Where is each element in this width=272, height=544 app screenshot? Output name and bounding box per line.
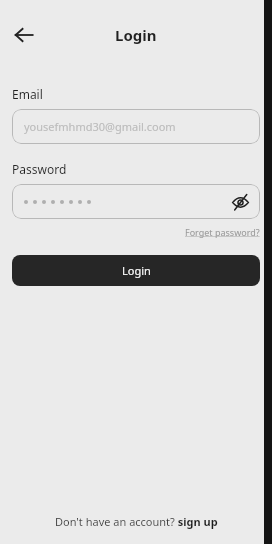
staticText: yousefmhmd30@gmail.coom [24, 119, 176, 134]
staticText: Password [12, 161, 67, 177]
staticText: Login [122, 263, 151, 278]
button[interactable]: Show password [228, 190, 252, 214]
button[interactable]: Back [8, 19, 40, 51]
staticText: Login [115, 25, 157, 45]
button[interactable]: Forget password? [185, 226, 260, 238]
button[interactable]: Don't have an account? sign up [55, 514, 218, 529]
button[interactable]: Login [12, 255, 260, 286]
staticText: Email [12, 86, 43, 102]
button[interactable]: Show password [12, 184, 260, 219]
button[interactable]: yousefmhmd30@gmail.coom [12, 109, 260, 144]
